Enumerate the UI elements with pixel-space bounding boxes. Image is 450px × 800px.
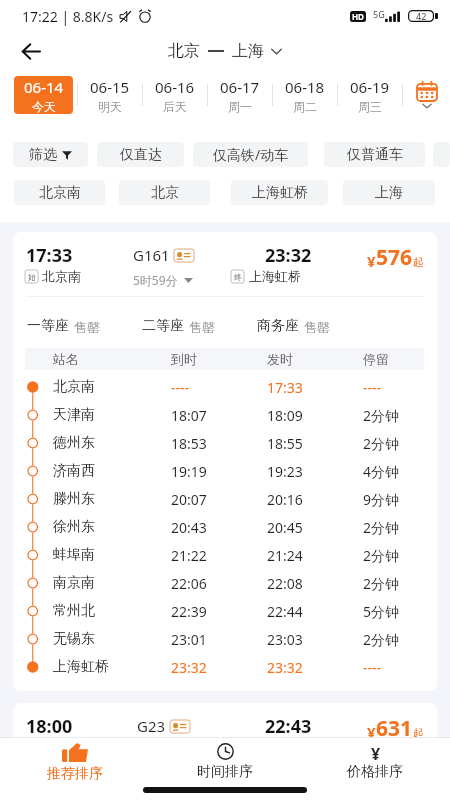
staticText: 17:33 [26,243,73,268]
staticText: 北京南 [42,268,81,284]
button[interactable]: 06-19 [338,76,402,114]
staticText: 上海虹桥 [252,184,308,202]
staticText: 19:23 [267,462,363,481]
staticText: 北京 [168,41,200,61]
staticText: 18:00 [26,714,73,739]
staticText: 22:44 [267,602,363,621]
staticText: 上海虹桥 [53,658,171,676]
staticText: 06-19 [350,77,390,97]
staticText: 推荐排序 [47,765,103,780]
staticText: 06-15 [90,77,130,97]
staticText: 18:09 [267,406,363,425]
staticText: ---- [171,378,267,397]
staticText: 5时59分 [133,272,178,288]
staticText: 23:01 [171,630,267,649]
staticText: 2分钟 [363,630,400,649]
staticText: 北京南 [42,739,81,755]
staticText: 筛选 [29,146,57,164]
staticText: 18:53 [171,434,267,453]
staticText: 19:19 [171,462,267,481]
staticText: 22:08 [267,574,363,593]
button[interactable]: 筛选 [13,142,88,167]
staticText: 5G [373,8,385,20]
button[interactable]: 06-17 [208,76,272,114]
button[interactable]: 推荐排序 [0,743,150,780]
staticText: 仅直达 [120,146,162,164]
staticText: 576 [376,243,413,272]
staticText: 2分钟 [363,546,400,565]
staticText: 北京 [151,184,179,202]
staticText: 周一 [228,99,252,114]
staticText: 631 [376,714,413,743]
staticText: 周二 [293,99,317,114]
staticText: 06-14 [24,77,64,97]
staticText: 价格排序 [347,763,403,780]
button[interactable]: ¥ [300,743,450,780]
staticText: 售罄 [74,319,100,335]
staticText: 时间排序 [197,763,253,780]
staticText: 21:22 [171,546,267,565]
staticText: 18:55 [267,434,363,453]
button[interactable]: 06-16 [143,76,207,114]
staticText: ¥ [371,743,381,760]
staticText: 德州东 [53,434,171,452]
staticText: ¥ [367,251,376,271]
staticText: 始 [28,272,36,282]
button[interactable]: 时间排序 [150,743,300,780]
staticText: 4分钟 [363,462,400,481]
staticText: 42 [416,10,427,22]
button[interactable]: 仅高铁/动车 [193,142,308,167]
button[interactable]: 北京 [168,41,282,61]
staticText: 23:32 [267,658,363,677]
staticText: 北京南 [53,378,171,396]
staticText: 今天 [32,99,56,114]
staticText: 停留 [363,351,389,367]
staticText: 上海 [375,184,403,202]
staticText: 20:43 [171,518,267,537]
staticText: 17:22 | 8.8K/s [22,7,114,26]
staticText: 到时 [171,351,267,367]
button[interactable]: 北京南 [14,180,105,205]
staticText: 5分钟 [363,602,400,621]
staticText: 滕州东 [53,490,171,508]
staticText: 22:43 [265,714,312,739]
button[interactable]: 北京 [119,180,210,205]
staticText: 起 [413,726,424,740]
button[interactable]: 上海虹桥 [231,180,328,205]
staticText: 23:03 [267,630,363,649]
staticText: 售罄 [189,319,215,335]
staticText: 20:16 [267,490,363,509]
staticText: 20:45 [267,518,363,537]
staticText: 上海 [232,41,264,61]
staticText: 一等座 [27,317,69,335]
staticText: 21:24 [267,546,363,565]
staticText: 2分钟 [363,518,400,537]
staticText: 06-18 [285,77,325,97]
staticText: ¥ [367,722,376,742]
button[interactable]: 06-15 [78,76,142,114]
staticText: 9分钟 [363,490,400,509]
staticText: 天津南 [53,406,171,424]
staticText: 20:07 [171,490,267,509]
button[interactable]: Calendar [404,81,450,109]
button[interactable]: Back [14,34,48,68]
staticText: 22:06 [171,574,267,593]
staticText: 商务座 [257,317,299,335]
button[interactable]: 仅普通车 [324,142,425,167]
button[interactable]: 06-14 [14,76,73,114]
button[interactable]: 仅直达 [97,142,184,167]
staticText: G161 [133,245,170,265]
staticText: 终 [234,272,242,282]
staticText: 无锡东 [53,630,171,648]
button[interactable]: 上海 [343,180,435,205]
button[interactable]: 06-18 [273,76,337,114]
staticText: 北京南 [39,184,81,202]
staticText: 发时 [267,351,363,367]
staticText: 06-17 [220,77,260,97]
staticText: 售罄 [304,319,330,335]
staticText: 22:39 [171,602,267,621]
